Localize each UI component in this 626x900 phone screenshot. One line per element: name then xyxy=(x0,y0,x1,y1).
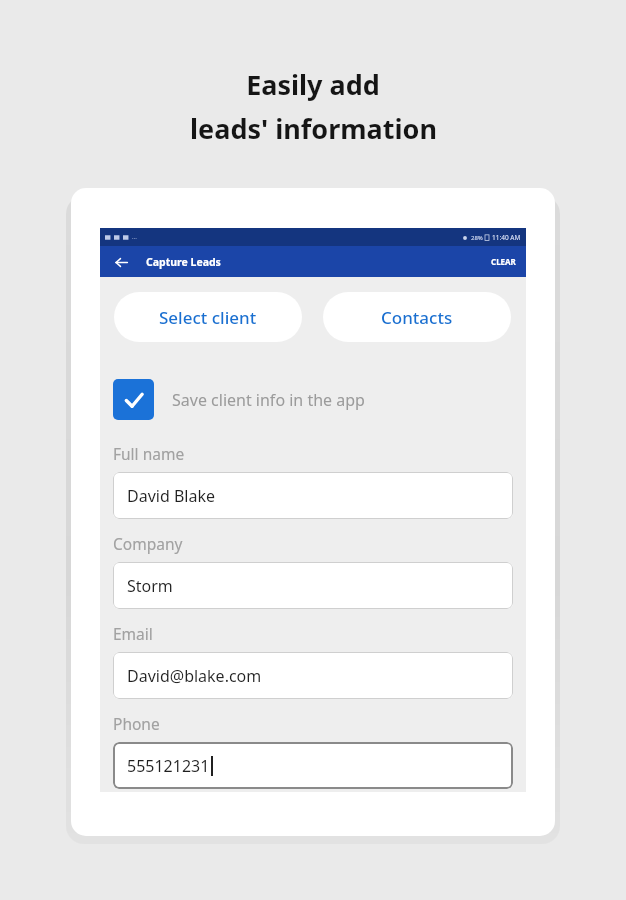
staticText: leads' information xyxy=(190,110,437,147)
staticText: 555121231 xyxy=(127,755,210,777)
staticText: Contacts xyxy=(381,306,453,329)
button[interactable]: 555121231 xyxy=(113,742,513,789)
staticText: ... xyxy=(132,233,137,241)
staticText: Save client info in the app xyxy=(172,389,365,411)
button[interactable]: Select client xyxy=(114,292,302,342)
staticText: 28% xyxy=(471,234,483,242)
button[interactable]: Back xyxy=(110,251,132,273)
staticText: Capture Leads xyxy=(146,255,221,269)
button[interactable]: David@blake.com xyxy=(113,652,513,699)
button[interactable]: Contacts xyxy=(323,292,511,342)
button[interactable]: CLEAR xyxy=(481,250,526,273)
staticText: Storm xyxy=(127,575,173,597)
staticText: Phone xyxy=(113,713,160,734)
staticText: Select client xyxy=(159,306,257,329)
staticText: Full name xyxy=(113,443,185,464)
staticText: Easily add xyxy=(246,66,380,103)
staticText: David@blake.com xyxy=(127,665,262,687)
staticText: Company xyxy=(113,533,183,554)
button[interactable]: Storm xyxy=(113,562,513,609)
button[interactable]: David Blake xyxy=(113,472,513,519)
staticText: Email xyxy=(113,623,153,644)
staticText: CLEAR xyxy=(491,256,516,267)
staticText: 11:40 AM xyxy=(492,233,521,242)
button[interactable]: Save client info in the app xyxy=(113,379,513,420)
staticText: David Blake xyxy=(127,485,215,507)
